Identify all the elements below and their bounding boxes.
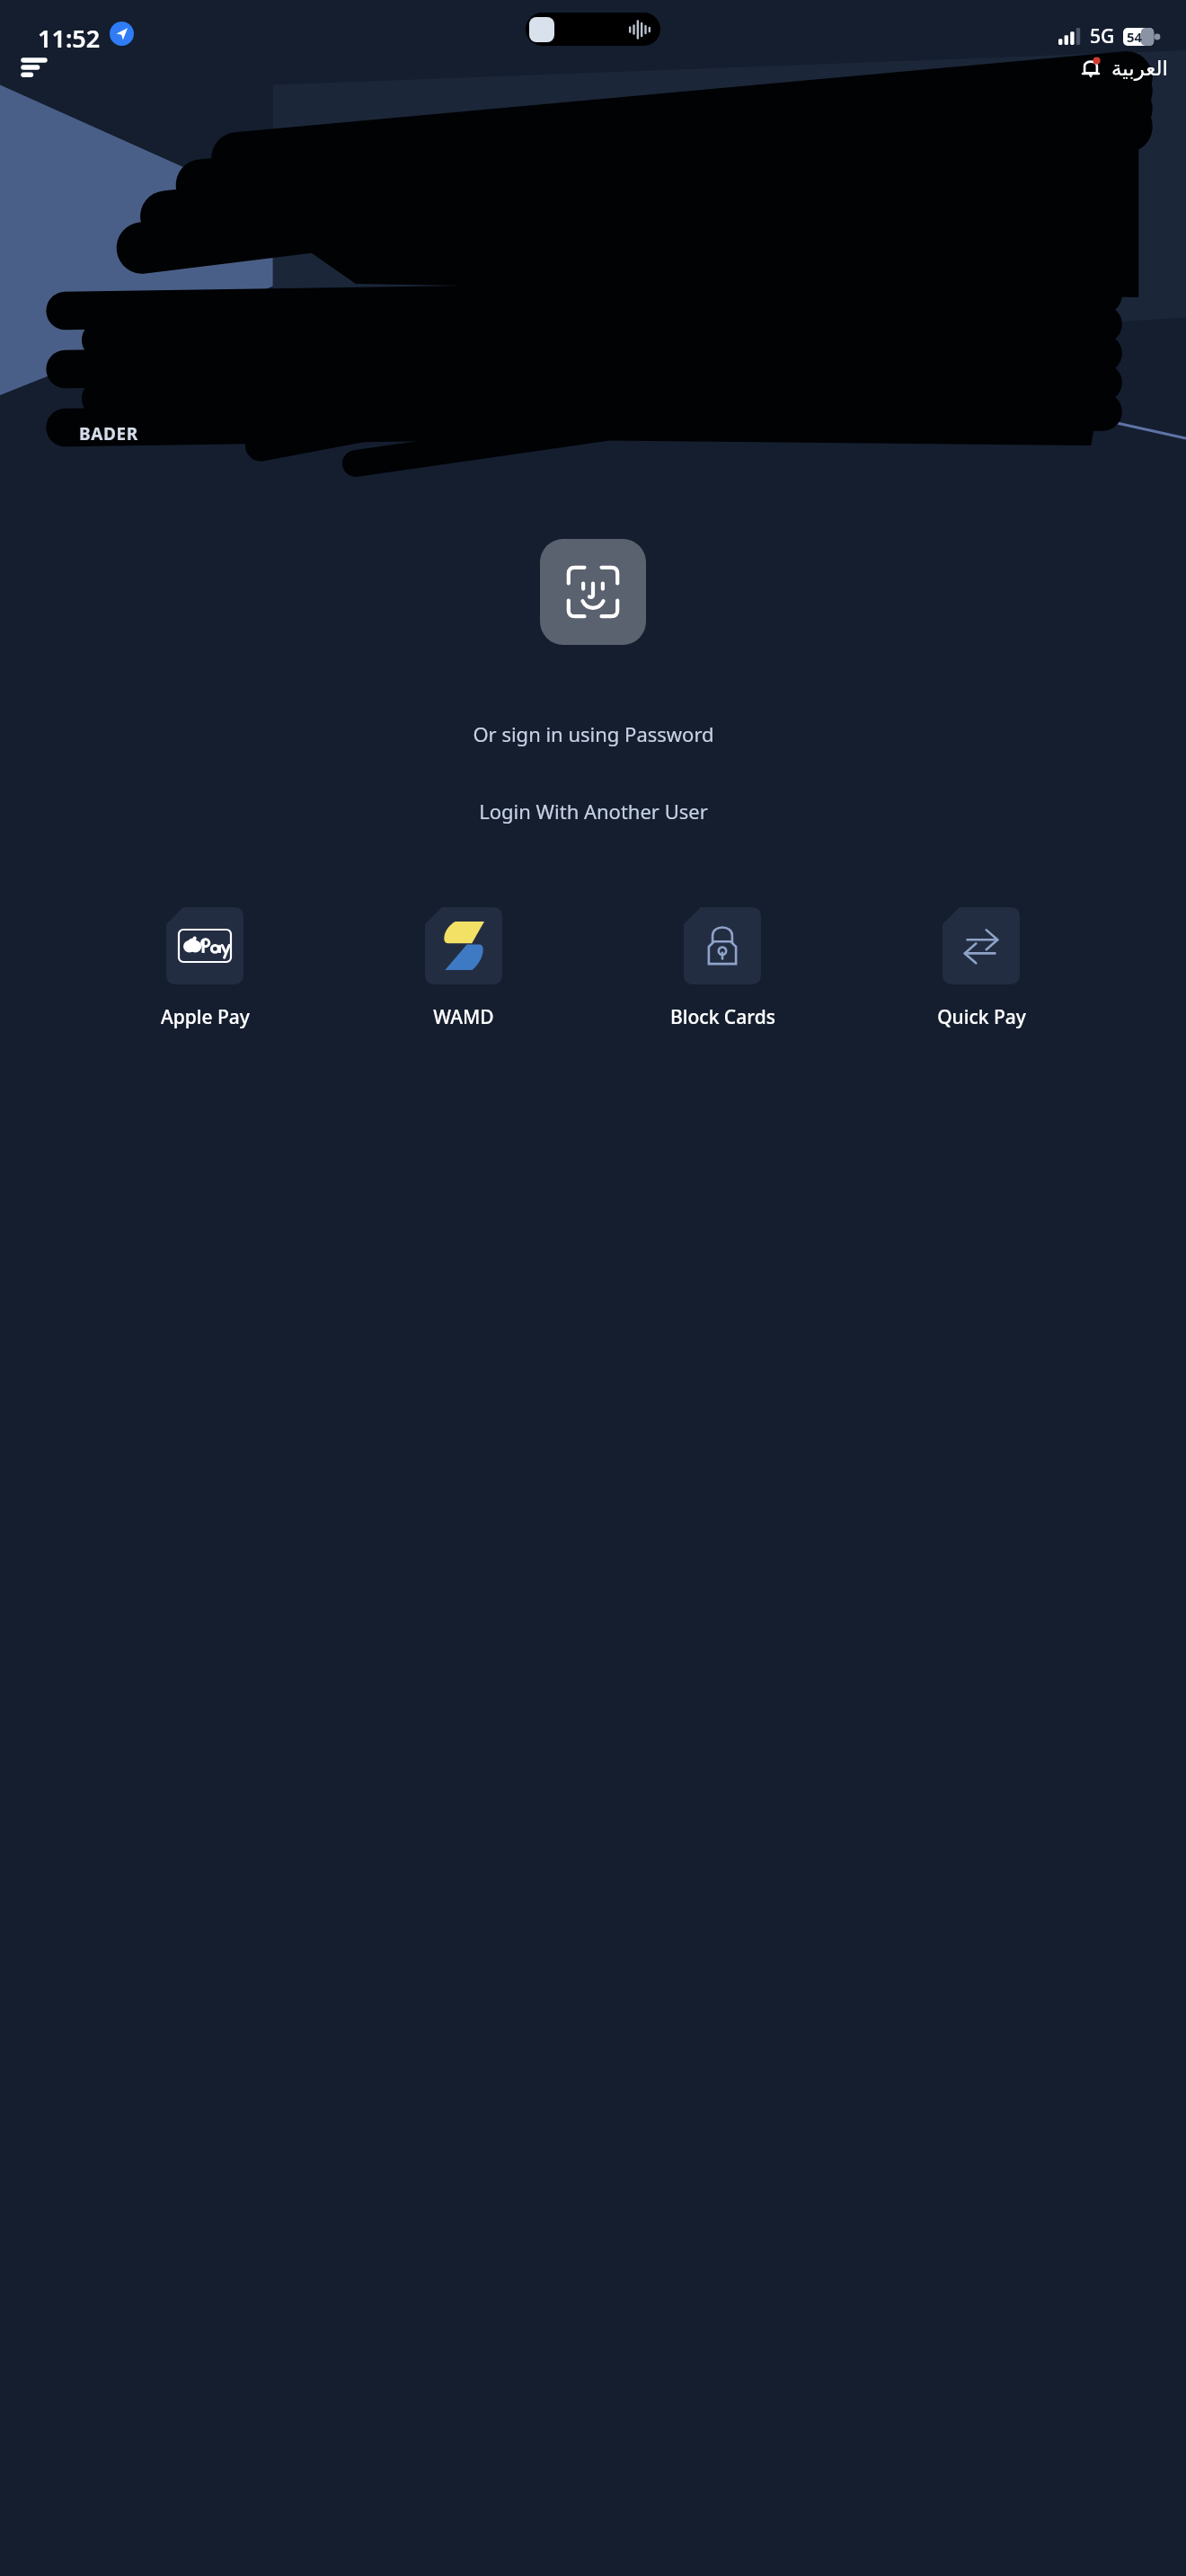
button[interactable]: Login With Another User [463,789,724,834]
other: Notifications [1075,53,1106,84]
button[interactable]: WAMD [401,907,527,1030]
staticText: Quick Pay [937,1004,1026,1030]
staticText: Apple Pay [161,1004,250,1030]
button[interactable]: Apple Pay [142,907,268,1030]
button[interactable]: Or sign in using Password [456,711,730,756]
staticText: Login With Another User [479,798,708,825]
staticText: 11:52 [38,22,101,55]
staticText: Or sign in using Password [473,720,714,747]
button[interactable]: Sign in with Face ID [540,539,646,645]
button[interactable]: Quick Pay [918,907,1044,1030]
button[interactable]: Block Cards [659,907,785,1030]
staticText: العربية [1111,57,1168,81]
staticText: 5G [1090,23,1115,49]
staticText: Block Cards [670,1004,775,1030]
button[interactable]: Notifications [1070,48,1173,89]
staticText: 54 [1127,28,1143,46]
staticText: WAMD [433,1004,494,1030]
staticText: BADER [79,422,138,446]
button[interactable]: Menu [13,44,61,93]
